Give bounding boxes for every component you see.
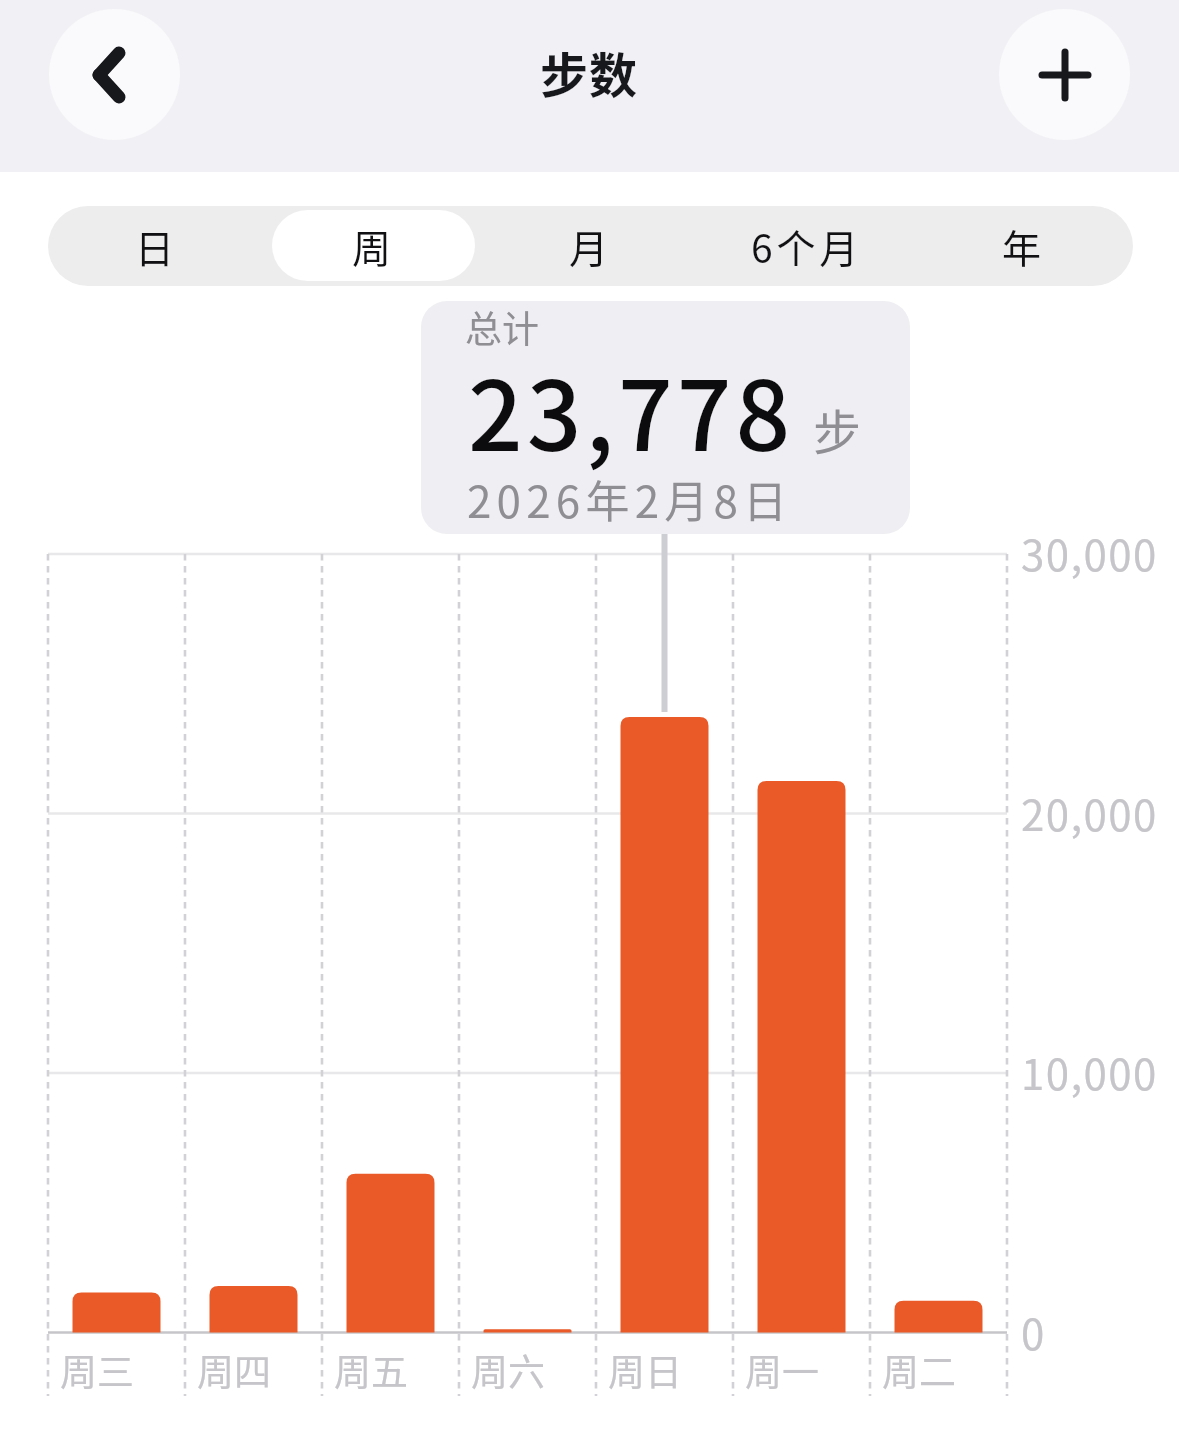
staticText: 23,778 xyxy=(468,340,795,479)
button[interactable]: Back xyxy=(49,9,180,140)
staticText: 20,000 xyxy=(1021,782,1158,843)
staticText: 日 xyxy=(135,218,178,274)
staticText: 10,000 xyxy=(1021,1041,1158,1102)
staticText: 周日 xyxy=(608,1343,682,1397)
staticText: 周三 xyxy=(60,1343,134,1397)
button[interactable]: 月 xyxy=(489,210,692,281)
staticText: 6个月 xyxy=(751,218,863,274)
staticText: 周六 xyxy=(471,1343,545,1397)
staticText: 周一 xyxy=(745,1343,819,1397)
staticText: 30,000 xyxy=(1021,522,1158,583)
staticText: 步 xyxy=(813,394,862,464)
button[interactable]: 周 xyxy=(272,210,475,281)
staticText: 周五 xyxy=(334,1343,408,1397)
staticText: 周四 xyxy=(197,1343,271,1397)
button[interactable]: 总计 xyxy=(421,301,910,534)
staticText: 0 xyxy=(1021,1301,1046,1362)
button[interactable]: 日 xyxy=(55,210,258,281)
staticText: 周二 xyxy=(882,1343,956,1397)
staticText: 步数 xyxy=(540,37,639,107)
staticText: 总计 xyxy=(465,301,539,354)
staticText: 月 xyxy=(569,218,612,274)
button[interactable]: Add xyxy=(999,9,1130,140)
button[interactable]: 6个月 xyxy=(705,210,908,281)
staticText: 2026年2月8日 xyxy=(467,467,793,531)
staticText: 周 xyxy=(352,218,395,274)
button[interactable]: 年 xyxy=(922,210,1125,281)
staticText: 年 xyxy=(1002,218,1045,274)
